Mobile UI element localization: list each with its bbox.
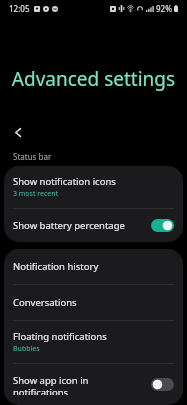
staticText: Floating notifications [13,330,107,343]
staticText: 12:05 [9,3,30,14]
staticText: 92% [156,3,172,14]
staticText: Status bar [13,151,52,162]
staticText: Notification history [13,260,174,273]
button[interactable]: Show app icon in notifications [4,364,183,405]
button[interactable]: Notification history [4,249,183,284]
staticText: Show battery percentage [13,219,145,232]
staticText: Bubbles [13,344,40,354]
staticText: Advanced settings [0,66,187,92]
button[interactable]: Show battery percentage [4,209,183,242]
staticText: 3 most recent [13,189,59,199]
staticText: Conversations [13,296,174,309]
button[interactable]: Conversations [4,285,183,320]
button[interactable]: Back [7,121,29,143]
button[interactable]: Floating notifications [4,321,183,363]
staticText: Show notification icons [13,175,116,188]
button[interactable]: Show notification icons [4,166,183,208]
staticText: Show app icon in notifications [13,374,145,395]
